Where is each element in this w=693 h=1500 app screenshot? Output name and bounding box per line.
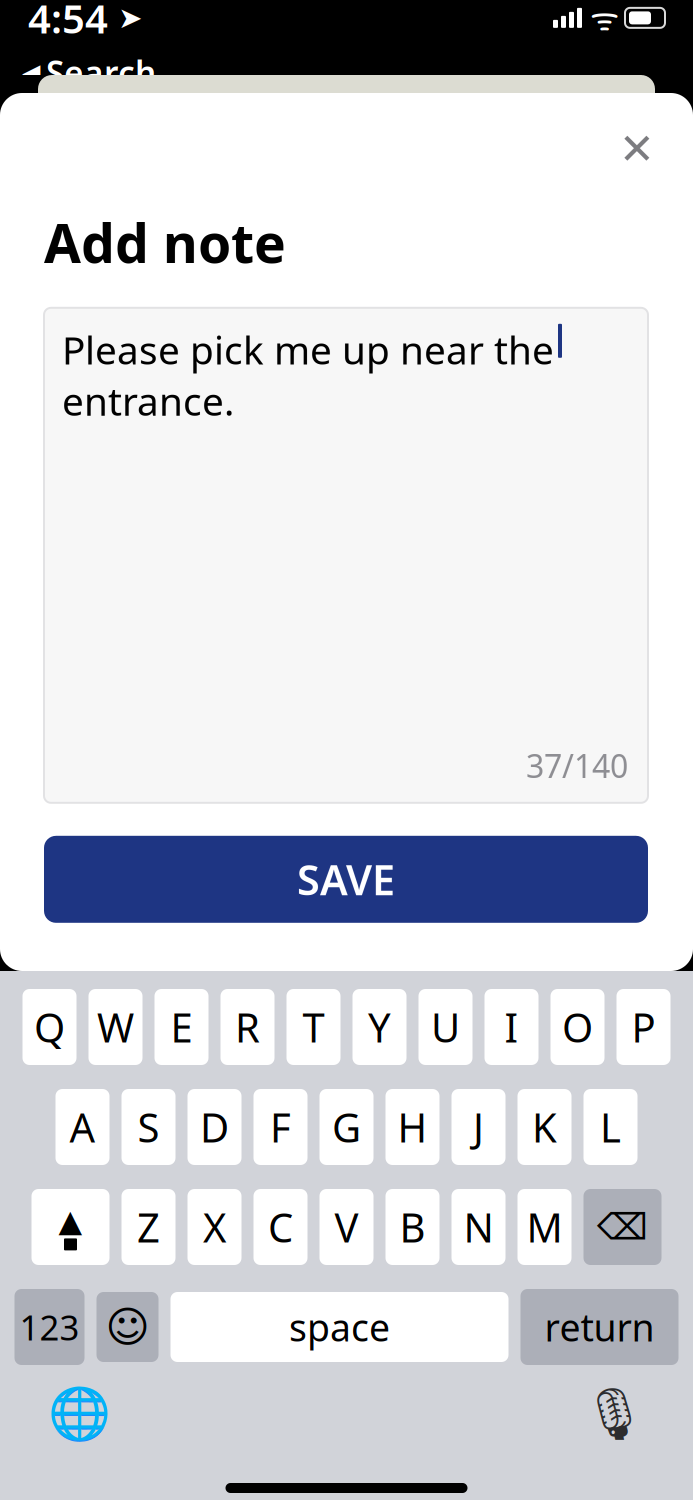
staticText: ✕ bbox=[619, 125, 655, 173]
staticText: L bbox=[600, 1100, 621, 1153]
staticText: X bbox=[203, 1200, 226, 1253]
staticText: W bbox=[97, 1000, 134, 1053]
button[interactable]: N bbox=[451, 1189, 505, 1265]
staticText: H bbox=[397, 1100, 427, 1153]
button[interactable]: Close bbox=[609, 121, 665, 177]
staticText: T bbox=[302, 1000, 324, 1053]
staticText: O bbox=[562, 1000, 593, 1053]
staticText: 123 bbox=[19, 1304, 79, 1350]
staticText: K bbox=[532, 1100, 557, 1153]
staticText: N bbox=[463, 1200, 493, 1253]
staticText: Z bbox=[137, 1200, 160, 1253]
staticText: 37/140 bbox=[526, 744, 628, 787]
button[interactable]: return bbox=[520, 1289, 678, 1365]
staticText: return bbox=[544, 1302, 654, 1352]
staticText: Y bbox=[368, 1000, 391, 1053]
button[interactable]: K bbox=[517, 1089, 571, 1165]
button[interactable]: Dictate bbox=[579, 1379, 649, 1449]
staticText: Search bbox=[46, 50, 156, 95]
button[interactable]: I bbox=[484, 989, 538, 1065]
button[interactable]: B bbox=[385, 1189, 439, 1265]
button[interactable]: U bbox=[418, 989, 472, 1065]
staticText: C bbox=[268, 1200, 293, 1253]
button[interactable]: T bbox=[286, 989, 340, 1065]
button[interactable]: Z bbox=[121, 1189, 175, 1265]
staticText: ➤ bbox=[108, 1, 143, 34]
button[interactable]: E bbox=[154, 989, 208, 1065]
staticText: I bbox=[504, 1000, 518, 1053]
staticText: Q bbox=[34, 1000, 65, 1053]
button[interactable]: F bbox=[253, 1089, 307, 1165]
button[interactable]: space bbox=[170, 1292, 508, 1362]
staticText: D bbox=[200, 1100, 229, 1153]
staticText: J bbox=[473, 1100, 484, 1153]
button[interactable]: S bbox=[121, 1089, 175, 1165]
button[interactable]: A bbox=[55, 1089, 109, 1165]
button[interactable]: SAVE bbox=[44, 836, 648, 923]
button[interactable]: G bbox=[319, 1089, 373, 1165]
staticText: ᯤ bbox=[582, 0, 619, 39]
staticText: ⌫ bbox=[597, 1207, 648, 1247]
button[interactable]: Shift bbox=[31, 1189, 109, 1265]
staticText: space bbox=[289, 1302, 390, 1352]
staticText: R bbox=[235, 1000, 260, 1053]
staticText: 4:54 bbox=[28, 0, 108, 44]
button[interactable]: Delete bbox=[583, 1189, 661, 1265]
staticText: SAVE bbox=[297, 852, 395, 907]
button[interactable]: Y bbox=[352, 989, 406, 1065]
button[interactable]: R bbox=[220, 989, 274, 1065]
button[interactable]: L bbox=[583, 1089, 637, 1165]
staticText: Please pick me up near the entrance. bbox=[62, 324, 554, 426]
staticText: E bbox=[170, 1000, 192, 1053]
staticText: Add note bbox=[44, 207, 286, 278]
staticText: ☺ bbox=[105, 1303, 149, 1351]
button[interactable]: M bbox=[517, 1189, 571, 1265]
button[interactable]: O bbox=[550, 989, 604, 1065]
button[interactable]: J bbox=[451, 1089, 505, 1165]
staticText: S bbox=[137, 1100, 159, 1153]
button[interactable]: 123 bbox=[14, 1289, 84, 1365]
button[interactable]: C bbox=[253, 1189, 307, 1265]
staticText: P bbox=[631, 1000, 655, 1053]
staticText: 🎙 bbox=[582, 1385, 646, 1443]
staticText: A bbox=[69, 1100, 95, 1153]
staticText: ◀ bbox=[22, 59, 40, 86]
staticText: U bbox=[431, 1000, 460, 1053]
staticText: V bbox=[334, 1200, 358, 1253]
button[interactable]: Emoji bbox=[96, 1292, 158, 1362]
button[interactable]: W bbox=[88, 989, 142, 1065]
staticText: 🌐 bbox=[47, 1385, 110, 1443]
button[interactable]: V bbox=[319, 1189, 373, 1265]
staticText: ▲ bbox=[58, 1204, 82, 1238]
staticText: B bbox=[399, 1200, 425, 1253]
button[interactable]: P bbox=[616, 989, 670, 1065]
staticText: F bbox=[270, 1100, 291, 1153]
button[interactable]: Q bbox=[22, 989, 76, 1065]
button[interactable]: H bbox=[385, 1089, 439, 1165]
staticText: M bbox=[526, 1200, 562, 1253]
staticText: G bbox=[332, 1100, 361, 1153]
button[interactable]: D bbox=[187, 1089, 241, 1165]
button[interactable]: X bbox=[187, 1189, 241, 1265]
button[interactable]: Change keyboard bbox=[44, 1379, 114, 1449]
